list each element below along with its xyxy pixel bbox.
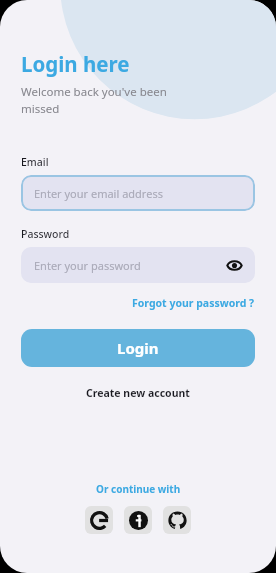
button[interactable]: Enter your email address bbox=[21, 175, 255, 211]
staticText: Password bbox=[21, 227, 70, 241]
button[interactable]: Enter your password bbox=[21, 247, 255, 283]
button[interactable]: Sign in with GitHub bbox=[163, 506, 191, 534]
staticText: Login bbox=[117, 338, 159, 358]
staticText: Login here bbox=[21, 50, 130, 78]
button[interactable]: Show password bbox=[225, 256, 244, 275]
staticText: Create new account bbox=[86, 386, 190, 400]
button[interactable]: Forgot your password ? bbox=[130, 294, 257, 312]
staticText: Enter your password bbox=[34, 258, 225, 273]
staticText: Welcome back you've been missed bbox=[21, 84, 204, 116]
button[interactable]: Login bbox=[21, 329, 255, 367]
staticText: Email bbox=[21, 155, 49, 169]
staticText: Forgot your password ? bbox=[132, 296, 255, 310]
button[interactable]: Sign in with Facebook bbox=[124, 506, 152, 534]
button[interactable]: Create new account bbox=[83, 383, 193, 403]
staticText: Enter your email address bbox=[34, 186, 163, 201]
staticText: Or continue with bbox=[96, 482, 181, 496]
button[interactable]: Sign in with Google bbox=[85, 506, 113, 534]
